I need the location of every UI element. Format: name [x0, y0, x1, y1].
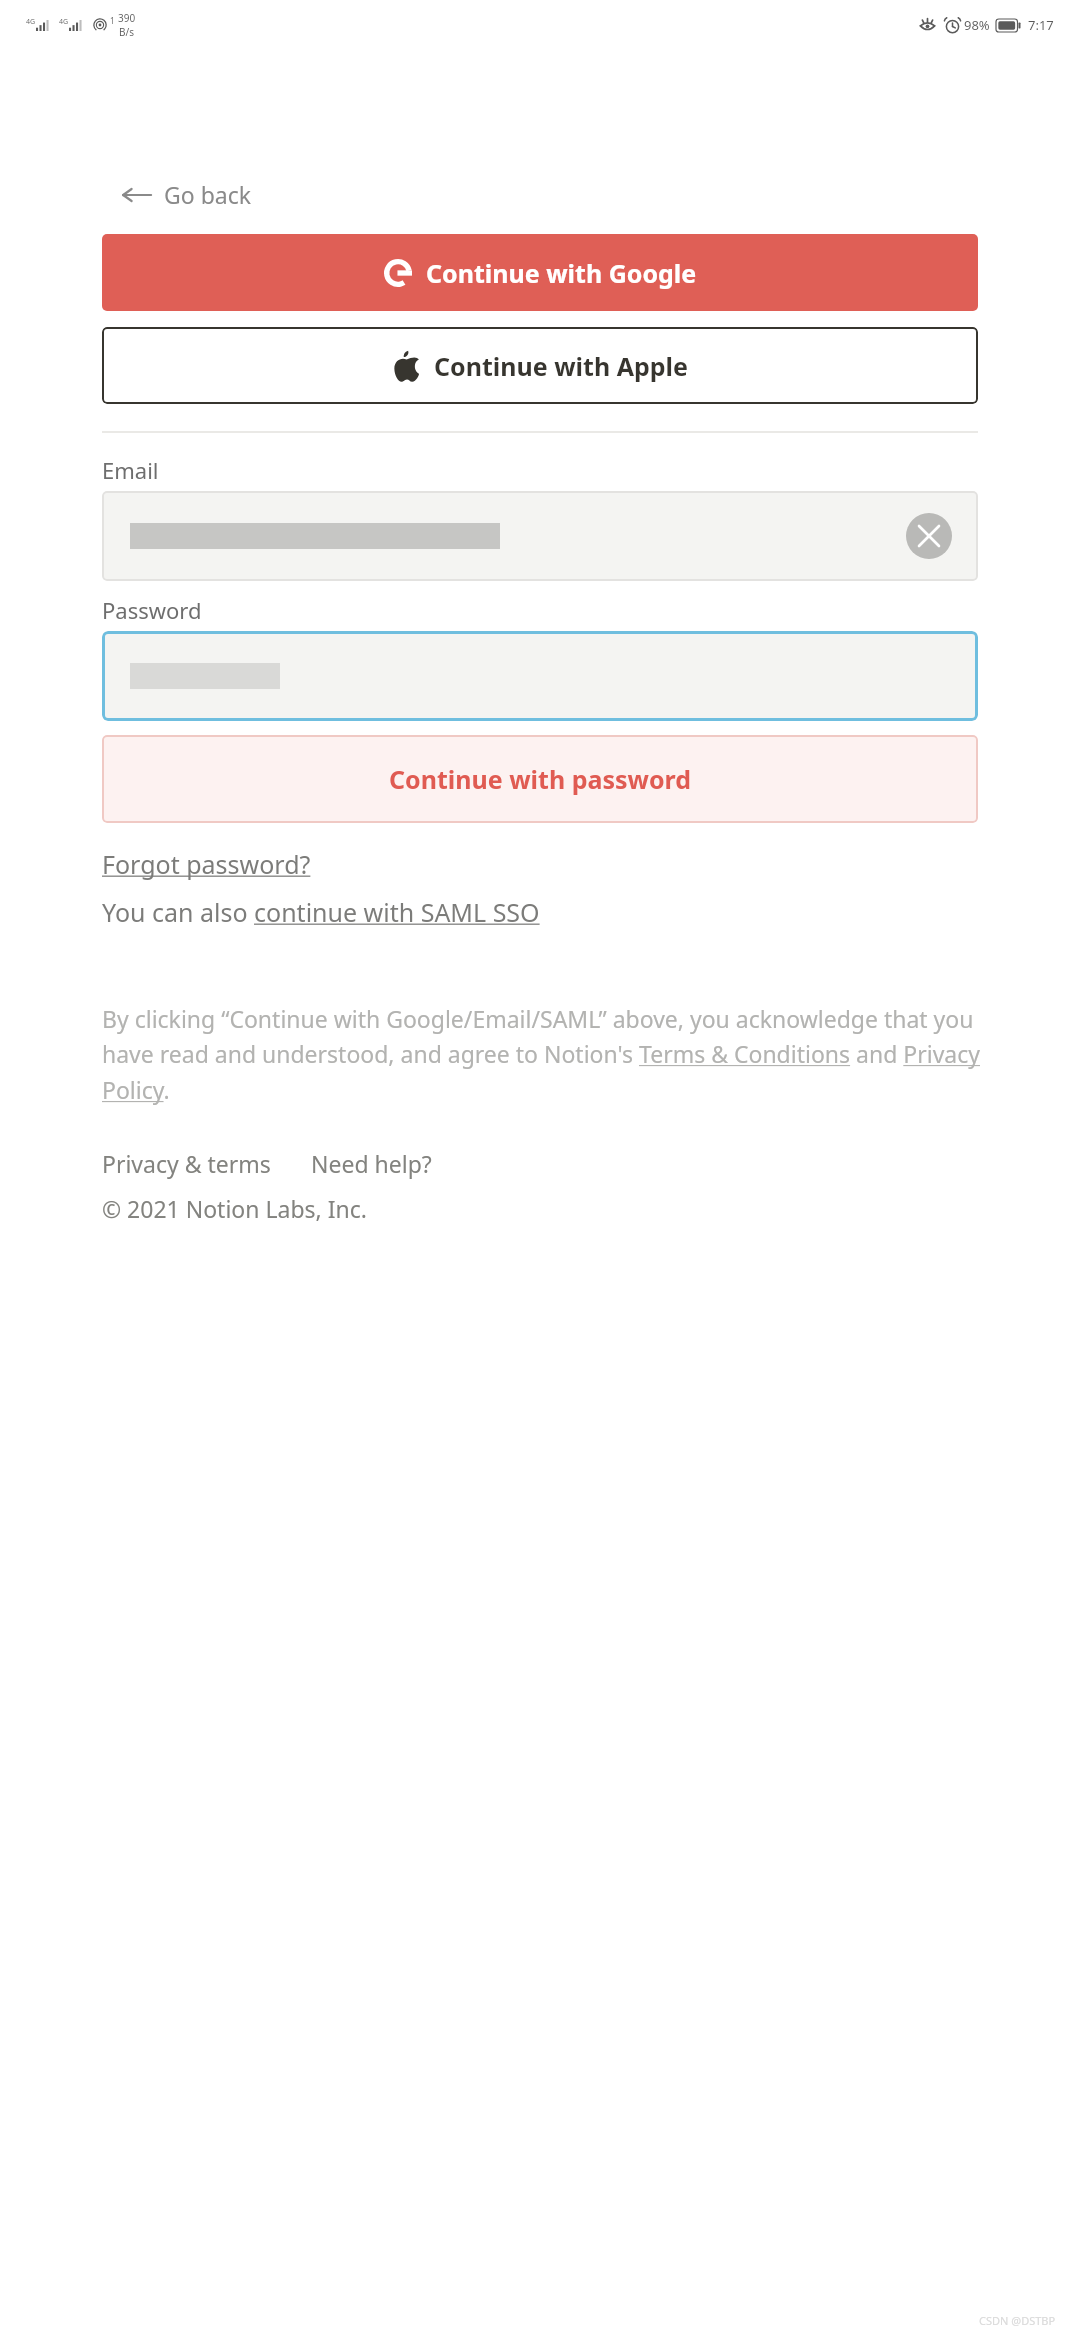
staticText: 7:17	[1028, 16, 1054, 34]
button[interactable]: Clear email	[906, 513, 952, 559]
staticText: Need help?	[311, 1148, 432, 1179]
staticText: Forgot password?	[102, 847, 311, 881]
staticText: You can also continue with SAML SSO	[102, 895, 540, 929]
button[interactable]: Continue with Apple	[102, 327, 978, 404]
staticText: Email	[102, 455, 159, 485]
staticText: Continue with password	[389, 762, 692, 796]
button[interactable]: Continue with password	[102, 735, 978, 823]
staticText: Continue with Google	[426, 256, 697, 290]
button[interactable]: Need help?	[311, 1148, 432, 1179]
staticText: 390	[118, 11, 136, 25]
button[interactable]: Privacy & terms	[102, 1148, 271, 1179]
button[interactable]: You can also continue with SAML SSO	[102, 895, 540, 929]
staticText: Password	[102, 595, 202, 625]
staticText: Continue with Apple	[434, 349, 688, 383]
button[interactable]: Go back	[118, 175, 256, 214]
button[interactable]: Forgot password?	[102, 847, 311, 881]
staticText: Privacy & terms	[102, 1148, 271, 1179]
button[interactable]	[102, 631, 978, 721]
button[interactable]: Clear email	[102, 491, 978, 581]
staticText: By clicking “Continue with Google/Email/…	[102, 1003, 1024, 1106]
staticText: © 2021 Notion Labs, Inc.	[102, 1193, 367, 1224]
staticText: B/s	[119, 25, 135, 39]
staticText: 1	[110, 15, 115, 26]
staticText: 98%	[964, 16, 990, 34]
staticText: 4G	[26, 17, 36, 27]
staticText: 4G	[59, 17, 69, 27]
staticText: Go back	[164, 179, 252, 210]
staticText: CSDN @DSTBP	[979, 2313, 1056, 2328]
button[interactable]: Continue with Google	[102, 234, 978, 311]
